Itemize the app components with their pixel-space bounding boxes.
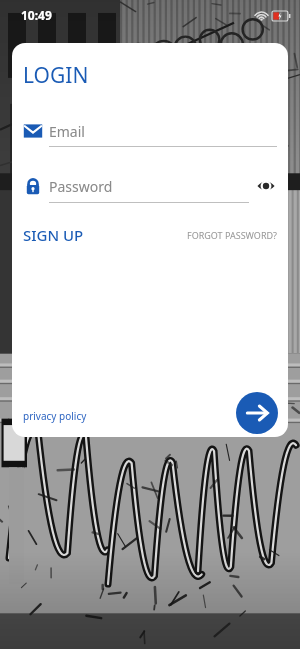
button[interactable]: FORGOT PASSWORD? [187, 225, 277, 245]
staticText: 10:49 [21, 7, 52, 23]
staticText: SIGN UP [23, 225, 84, 245]
staticText: LOGIN [23, 61, 89, 90]
button[interactable]: Show password [255, 175, 277, 197]
button[interactable]: Email [49, 122, 277, 141]
staticText: Password [49, 177, 113, 196]
button[interactable]: SIGN UP [23, 222, 84, 248]
staticText: privacy policy [23, 409, 87, 423]
staticText: Email [49, 122, 85, 141]
button[interactable]: Continue [236, 392, 278, 434]
button[interactable]: privacy policy [23, 409, 87, 423]
staticText: FORGOT PASSWORD? [187, 229, 277, 241]
button[interactable]: Password [49, 177, 249, 196]
